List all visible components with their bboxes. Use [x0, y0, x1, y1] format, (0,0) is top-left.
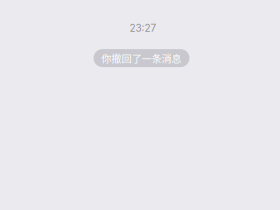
staticText: 你撤回了一条消息 [101, 51, 181, 65]
staticText: 23:27 [129, 22, 156, 34]
